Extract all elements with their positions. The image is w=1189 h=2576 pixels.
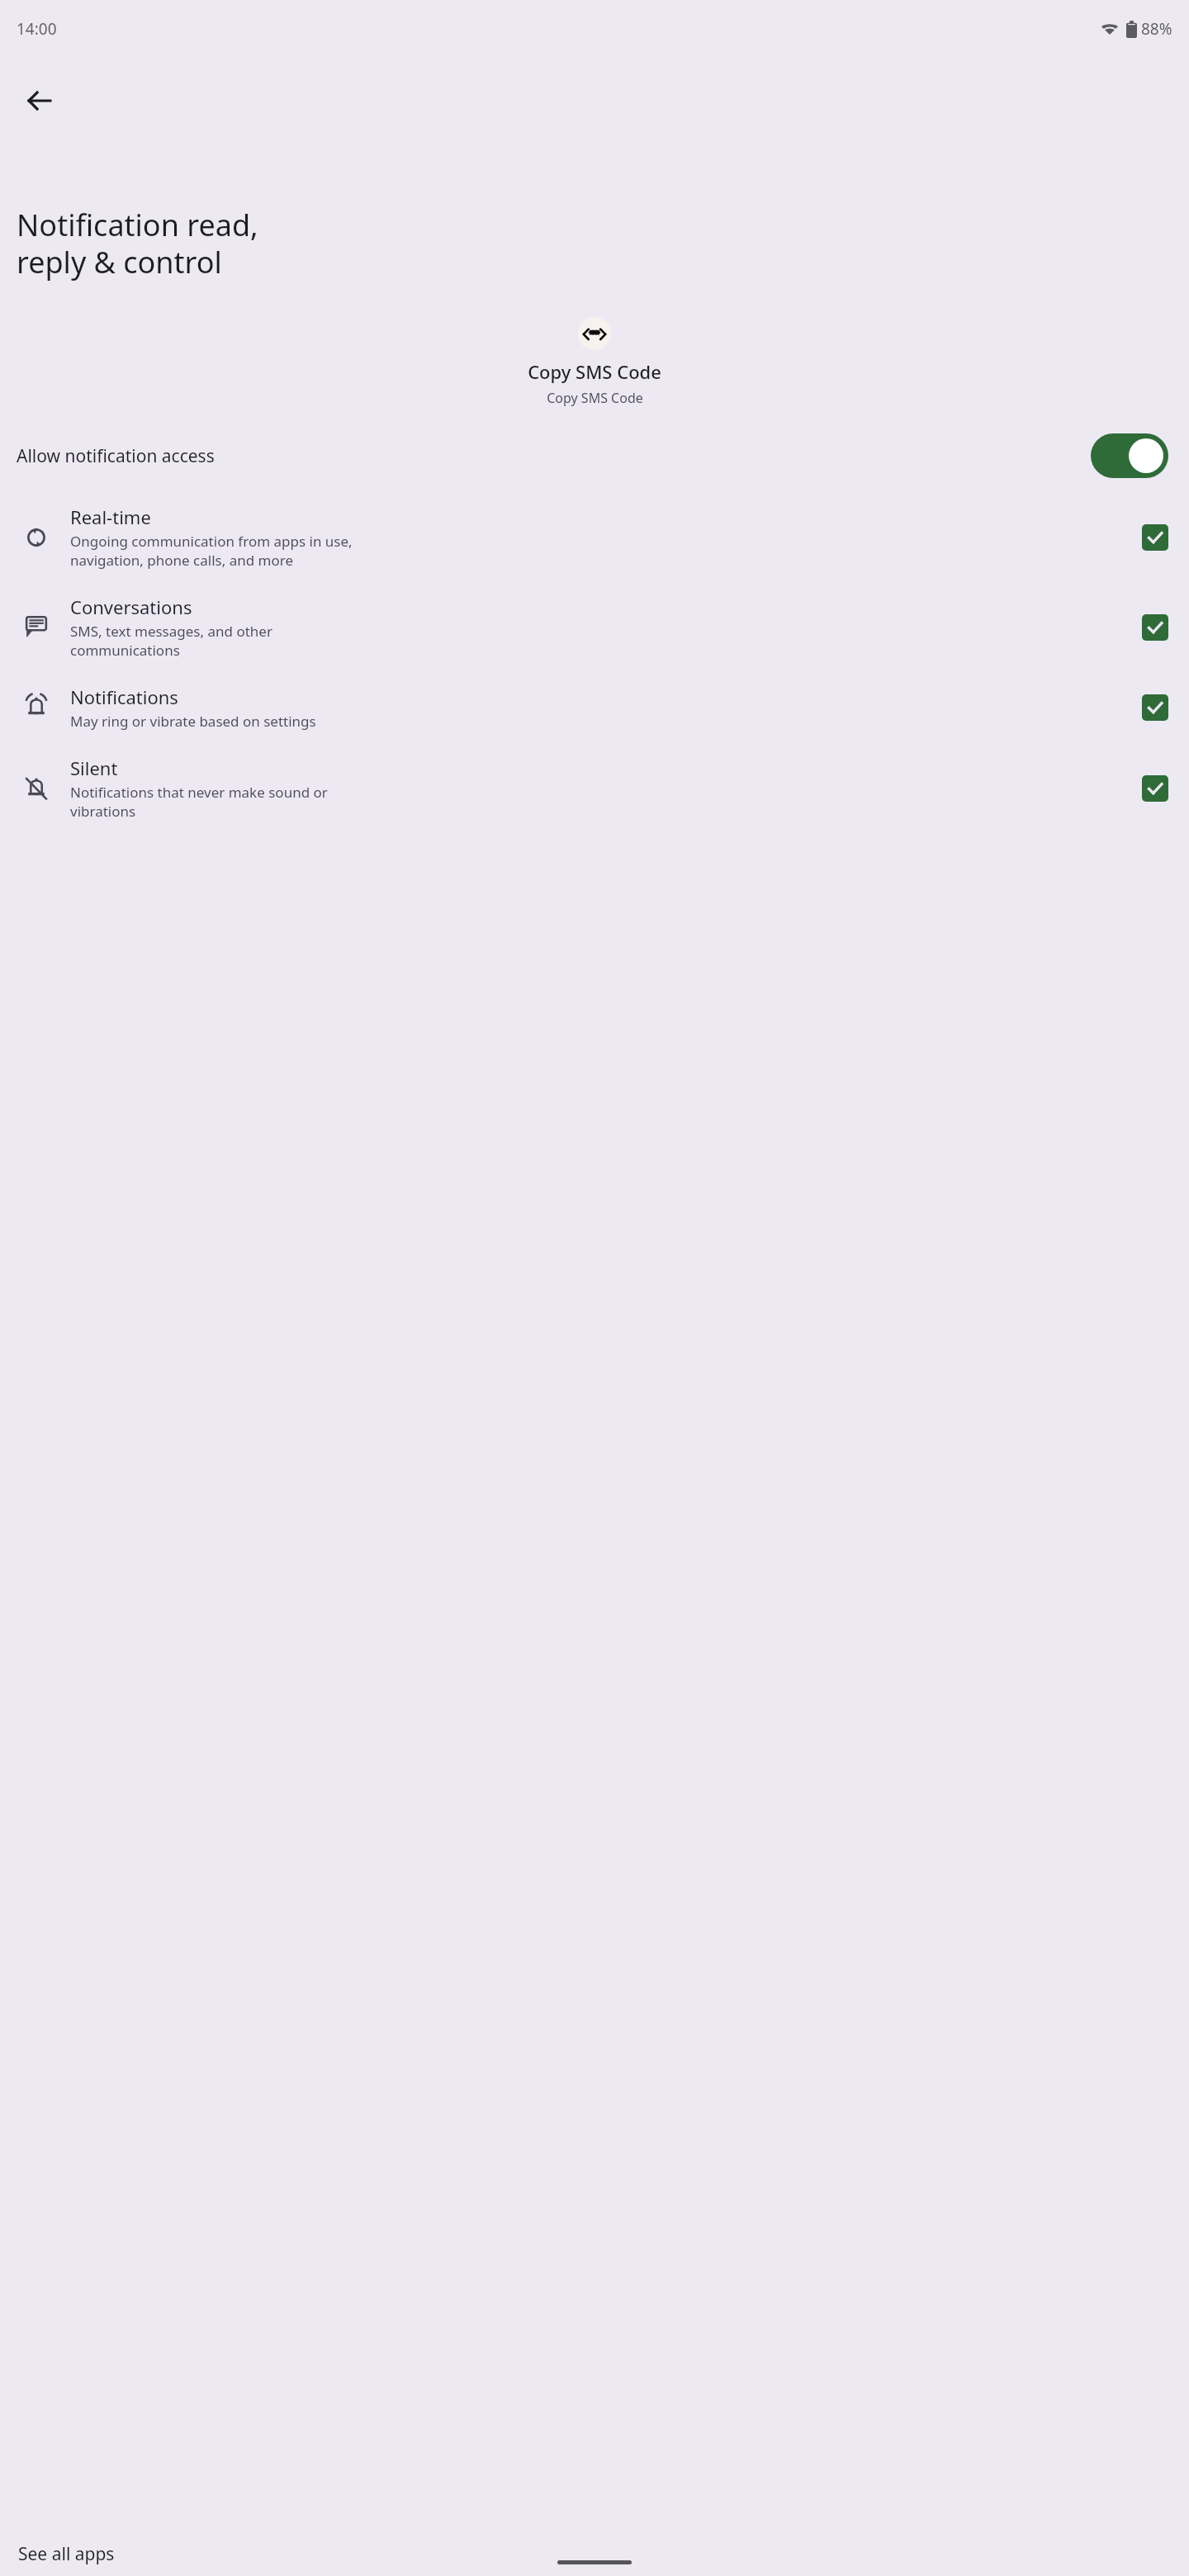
staticText: SMS, text messages, and other communicat… <box>70 622 272 660</box>
staticText: Real-time <box>70 504 151 529</box>
staticText: Silent <box>70 755 118 780</box>
staticText: 88% <box>1141 18 1172 40</box>
button[interactable]: Silent <box>0 752 1189 824</box>
staticText: Copy SMS Code <box>528 359 661 384</box>
staticText: Notifications that never make sound or v… <box>70 783 328 821</box>
button[interactable]: See all apps <box>0 2542 115 2576</box>
button[interactable]: Real-time <box>0 501 1189 573</box>
staticText: May ring or vibrate based on settings <box>70 712 316 731</box>
staticText: Copy SMS Code <box>547 389 643 407</box>
staticText: Conversations <box>70 594 192 619</box>
staticText: Ongoing communication from apps in use, … <box>70 532 353 570</box>
staticText: Notifications <box>70 684 178 709</box>
staticText: Notification read, reply & control <box>17 205 258 282</box>
button[interactable]: Allow notification access <box>0 430 1189 481</box>
button[interactable]: Notifications <box>0 681 1189 734</box>
button[interactable]: Conversations <box>0 591 1189 663</box>
button[interactable]: Back <box>18 79 61 122</box>
staticText: Allow notification access <box>17 444 1091 468</box>
staticText: 14:00 <box>17 18 57 40</box>
